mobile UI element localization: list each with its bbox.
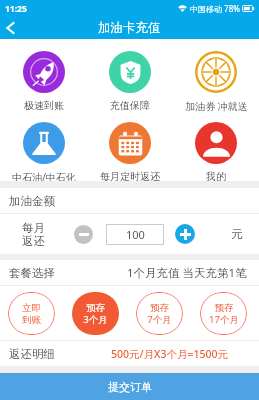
staticText: 1个月充值 当天充第1笔 — [127, 265, 247, 281]
button[interactable]: 每月定时返还 — [87, 122, 173, 181]
button[interactable]: 充值保障 — [87, 51, 173, 112]
button[interactable]: 预存 3个月 — [72, 292, 119, 335]
button[interactable]: 立即 到账 — [8, 292, 55, 335]
button[interactable]: 我的 — [173, 122, 259, 181]
staticText: 返还明细 — [9, 347, 55, 361]
staticText: 每月定时返还 — [100, 170, 160, 181]
staticText: 提交订单 — [108, 380, 152, 394]
staticText: 加油金额 — [9, 194, 55, 208]
staticText: 我的 — [206, 170, 226, 181]
staticText: 加油卡充值 — [98, 20, 161, 36]
staticText: 500元/月X3个月=1500元 — [111, 347, 229, 361]
staticText: 每月 返还 — [22, 221, 45, 248]
button[interactable]: 100 — [106, 224, 164, 245]
button[interactable]: 加油券 冲就送 — [173, 51, 259, 113]
staticText: 极速到账 — [24, 99, 64, 112]
button[interactable]: 提交订单 — [0, 373, 259, 400]
button[interactable]: 预存 17个月 — [200, 292, 247, 335]
button[interactable]: 返回 — [0, 17, 20, 39]
button[interactable]: 减少 — [74, 225, 93, 244]
staticText: 套餐选择 — [9, 266, 55, 280]
button[interactable]: 预存 7个月 — [136, 292, 183, 335]
staticText: 预存 7个月 — [147, 302, 172, 326]
button[interactable]: 极速到账 — [0, 51, 87, 112]
staticText: 充值保障 — [110, 99, 150, 112]
staticText: 100 — [126, 227, 145, 242]
staticText: 预存 3个月 — [83, 302, 108, 326]
staticText: 11:25 — [5, 3, 27, 15]
staticText: 立即 到账 — [22, 302, 41, 326]
staticText: 中国移动 78% — [190, 3, 240, 14]
staticText: 元 — [231, 227, 243, 241]
button[interactable]: 中石油/中石化 — [0, 122, 87, 181]
staticText: 中石油/中石化 — [12, 170, 76, 181]
staticText: 预存 17个月 — [209, 302, 239, 326]
button[interactable]: 增加 — [175, 224, 195, 244]
staticText: 加油券 冲就送 — [185, 99, 248, 113]
